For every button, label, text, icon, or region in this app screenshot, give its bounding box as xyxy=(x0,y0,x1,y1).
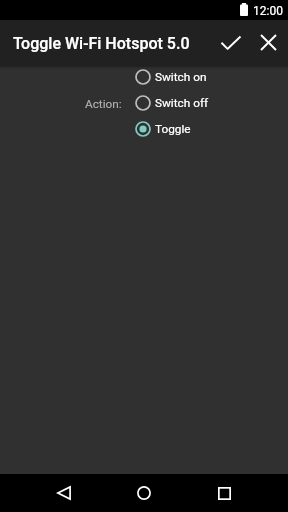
button[interactable]: Home xyxy=(124,474,164,512)
staticText: Toggle Wi-Fi Hotspot 5.0 xyxy=(13,34,190,53)
staticText: Toggle xyxy=(155,122,191,136)
staticText: 12:00 xyxy=(253,4,283,18)
staticText: Action: xyxy=(85,97,122,111)
button[interactable]: Switch off xyxy=(135,90,209,116)
button[interactable]: Back xyxy=(44,474,84,512)
button[interactable]: Close xyxy=(248,20,288,65)
button[interactable]: Confirm xyxy=(210,20,251,65)
button[interactable]: Switch on xyxy=(135,64,207,90)
staticText: Switch on xyxy=(155,70,207,84)
staticText: Switch off xyxy=(155,96,209,110)
button[interactable]: Toggle xyxy=(135,116,191,142)
button[interactable]: Recent apps xyxy=(204,474,244,512)
